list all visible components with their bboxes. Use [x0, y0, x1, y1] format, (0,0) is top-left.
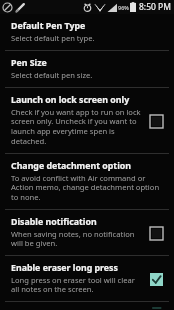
- staticText: To avoid conflict with Air command or Ac…: [11, 173, 166, 203]
- staticText: Launch on lock screen only: [11, 94, 130, 106]
- button[interactable]: Enable eraser long press checkbox: [146, 269, 166, 289]
- button[interactable]: Launch on lock screen only: [0, 88, 174, 153]
- button[interactable]: Disable notification checkbox: [146, 223, 166, 243]
- staticText: Change detachment option: [11, 160, 131, 172]
- staticText: 96%: [118, 4, 129, 11]
- button[interactable]: Launch on lock screen only checkbox: [146, 111, 166, 131]
- button[interactable]: Enable eraser long press: [0, 256, 174, 301]
- staticText: Select default pen size.: [11, 70, 93, 80]
- staticText: When saving notes, no notification will …: [11, 229, 142, 249]
- button[interactable]: Last saved note: [0, 302, 174, 310]
- staticText: Select default pen type.: [11, 33, 95, 43]
- staticText: Check if you want app to run on lock scr…: [11, 107, 142, 147]
- staticText: Enable eraser long press: [11, 262, 118, 274]
- staticText: Default Pen Type: [11, 20, 86, 32]
- staticText: Disable notification: [11, 216, 97, 228]
- staticText: Long press on eraser tool will clear all…: [11, 275, 142, 295]
- staticText: 8:50 PM: [139, 1, 171, 13]
- button[interactable]: Disable notification: [0, 210, 174, 255]
- button[interactable]: Pen Size: [0, 51, 174, 87]
- staticText: Pen Size: [11, 57, 47, 69]
- button[interactable]: Default Pen Type: [0, 14, 174, 50]
- button[interactable]: Change detachment option: [0, 154, 174, 209]
